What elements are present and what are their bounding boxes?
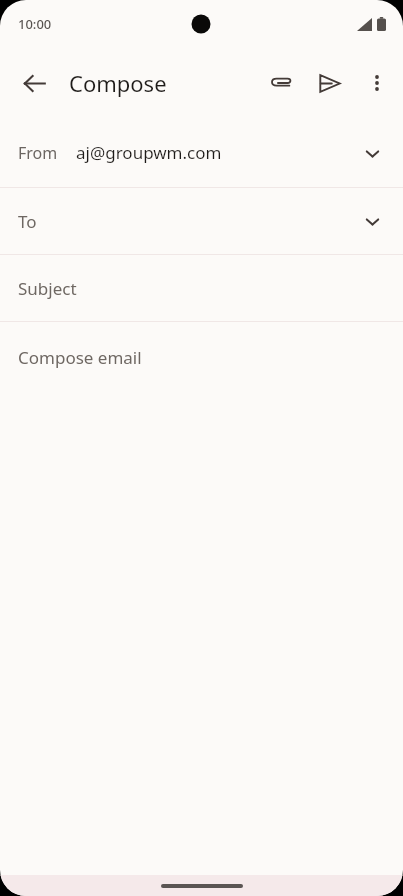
staticText: 10:00 (18, 15, 52, 33)
staticText: From (18, 142, 58, 164)
button[interactable]: More options (353, 59, 401, 107)
button[interactable]: Send (305, 59, 353, 107)
button[interactable]: To (0, 188, 403, 254)
button[interactable]: Expand (355, 136, 389, 170)
button[interactable]: Attach file (257, 59, 305, 107)
staticText: aj@groupwm.com (76, 141, 355, 164)
button[interactable]: Expand (355, 204, 389, 238)
staticText: Compose (69, 68, 167, 98)
button[interactable]: Subject (0, 255, 403, 321)
staticText: To (18, 210, 355, 233)
staticText: Compose email (18, 346, 142, 369)
button[interactable]: Back (10, 59, 58, 107)
button[interactable]: Compose email (0, 322, 403, 882)
button[interactable]: From (0, 118, 403, 187)
staticText: Subject (18, 277, 389, 300)
